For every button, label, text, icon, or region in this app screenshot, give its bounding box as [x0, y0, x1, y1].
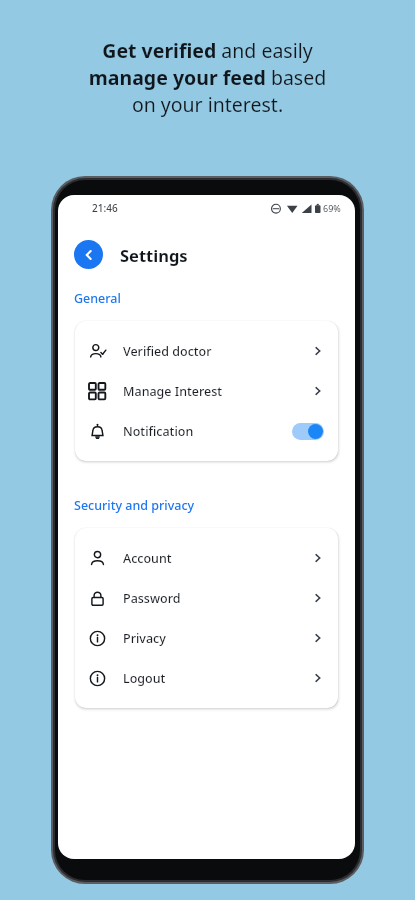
- button[interactable]: Notification toggle: [292, 423, 324, 440]
- staticText: Account: [123, 550, 172, 567]
- button[interactable]: Logout: [75, 658, 338, 698]
- staticText: Logout: [123, 670, 166, 687]
- staticText: Verified doctor: [123, 343, 212, 360]
- button[interactable]: Verified doctor: [75, 331, 338, 371]
- staticText: Privacy: [123, 630, 166, 647]
- button[interactable]: Back: [74, 240, 103, 269]
- staticText: 21:46: [92, 201, 118, 215]
- staticText: Security and privacy: [74, 497, 195, 514]
- button[interactable]: Privacy: [75, 618, 338, 658]
- staticText: Password: [123, 590, 181, 607]
- button[interactable]: Notification: [75, 411, 338, 451]
- staticText: Settings: [120, 244, 188, 266]
- button[interactable]: Password: [75, 578, 338, 618]
- staticText: General: [74, 290, 121, 307]
- staticText: 69%: [323, 202, 341, 214]
- staticText: Manage Interest: [123, 383, 223, 400]
- staticText: Notification: [123, 423, 194, 440]
- staticText: Get verified and easily manage your feed…: [20, 37, 395, 118]
- button[interactable]: Account: [75, 538, 338, 578]
- button[interactable]: Manage Interest: [75, 371, 338, 411]
